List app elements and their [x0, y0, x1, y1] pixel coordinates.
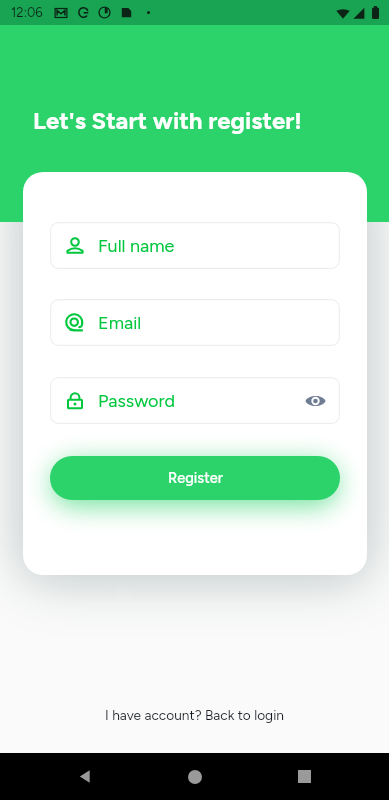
staticText: Email	[98, 312, 142, 334]
button[interactable]: Password	[50, 377, 340, 424]
button[interactable]: Full name	[50, 222, 340, 269]
button[interactable]: Show password	[298, 384, 332, 418]
button[interactable]: Recents	[280, 753, 328, 800]
button[interactable]: Register	[50, 456, 340, 500]
staticText: I have account? Back to login	[0, 707, 389, 723]
staticText: Register	[168, 469, 223, 487]
staticText: Let's Start with register!	[33, 106, 302, 135]
staticText: Full name	[98, 235, 175, 257]
staticText: Password	[98, 390, 176, 412]
button[interactable]: Home	[171, 753, 219, 800]
button[interactable]: Email	[50, 299, 340, 346]
staticText: 12:06	[11, 5, 43, 21]
button[interactable]: Back	[61, 753, 109, 800]
